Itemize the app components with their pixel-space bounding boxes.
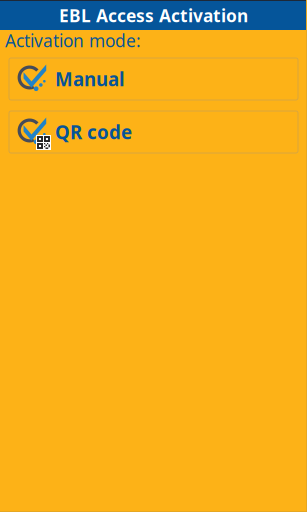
button[interactable]: Manual	[9, 58, 298, 100]
staticText: Manual	[55, 67, 125, 91]
staticText: Activation mode:	[5, 29, 141, 52]
button[interactable]: QR code	[9, 111, 298, 153]
staticText: QR code	[55, 120, 132, 144]
staticText: EBL Access Activation	[59, 4, 248, 27]
